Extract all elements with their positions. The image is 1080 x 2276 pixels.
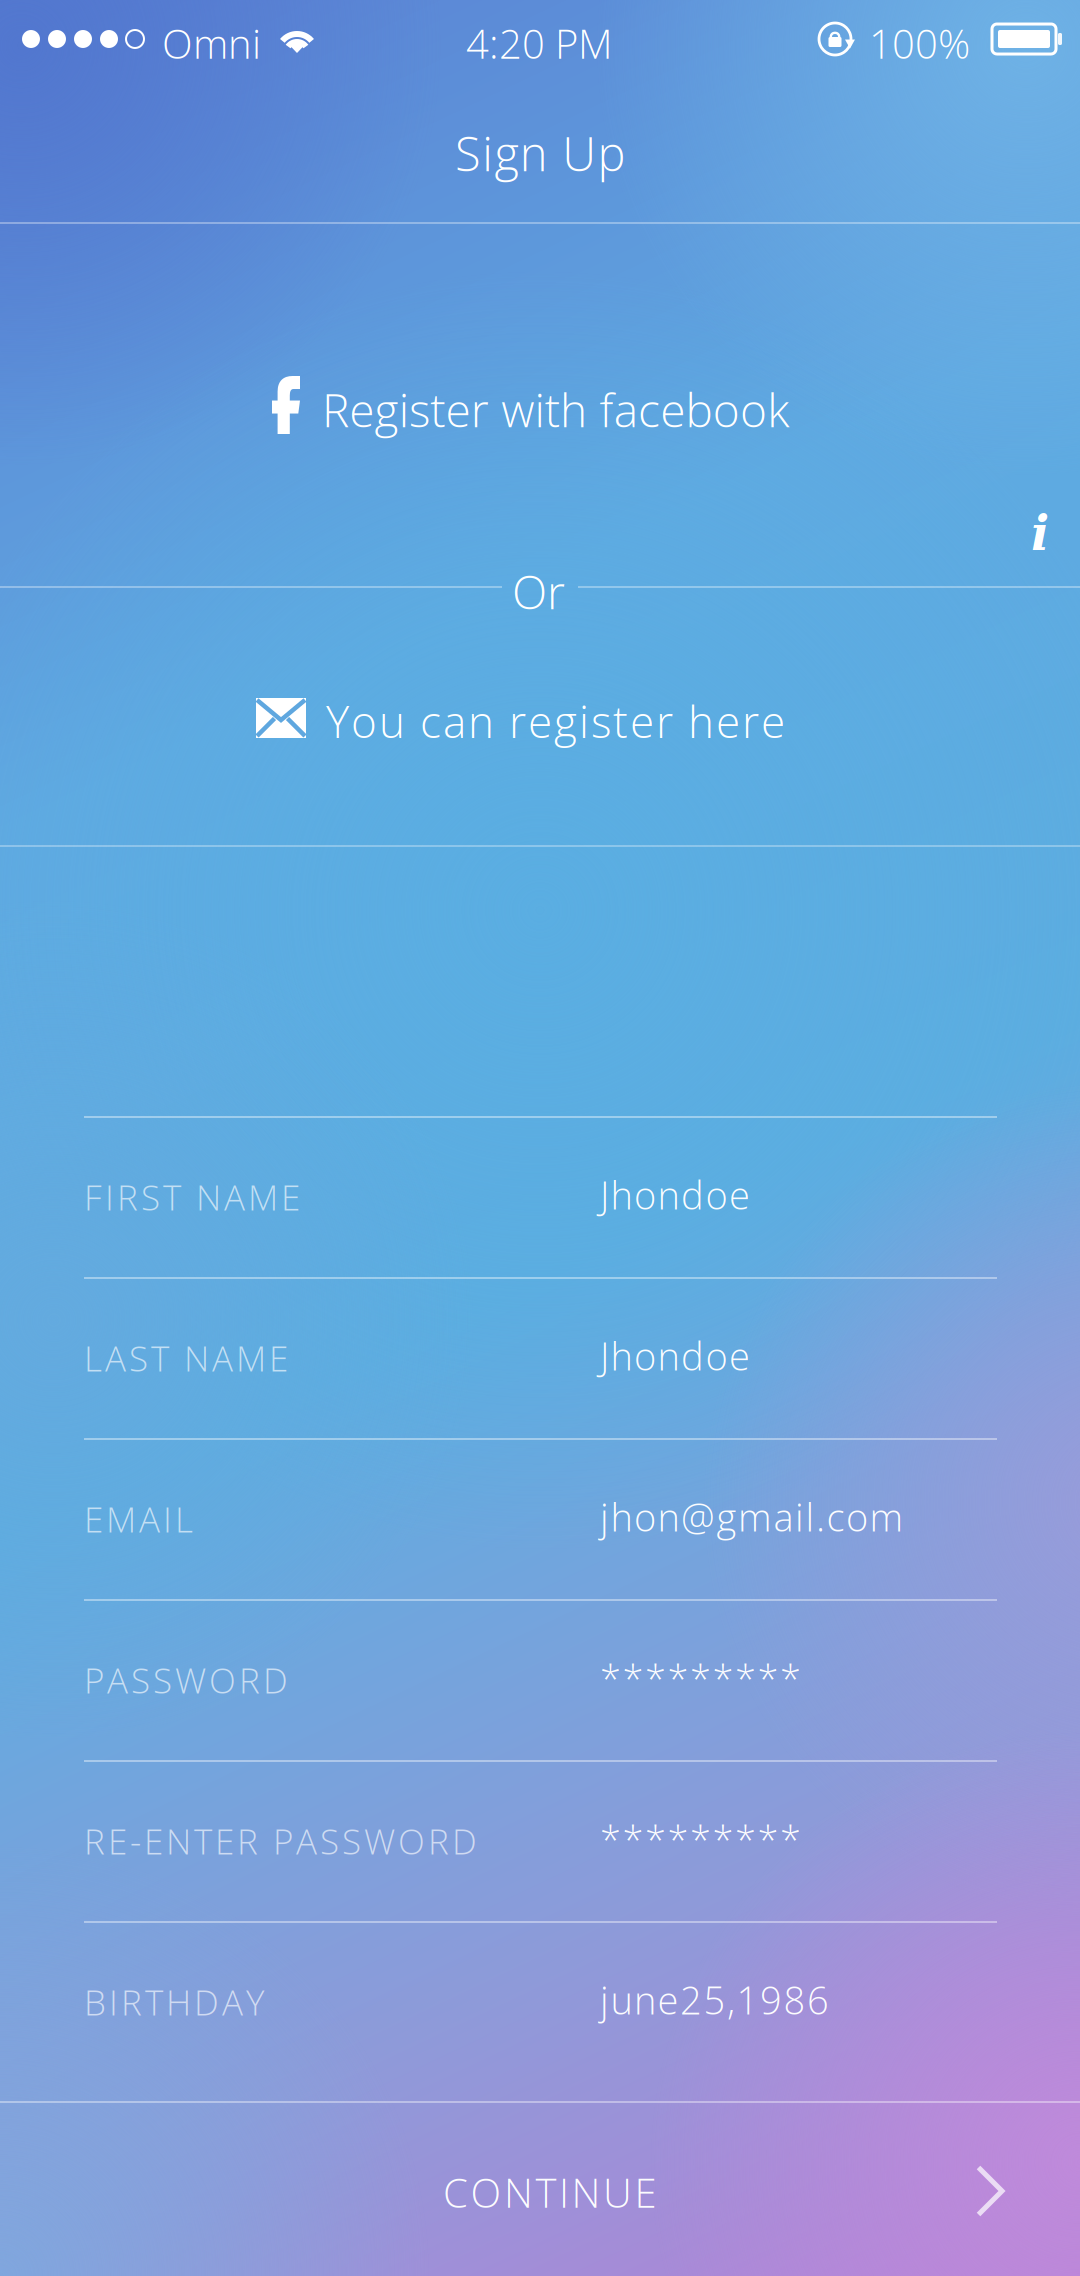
staticText: LAST NAME — [84, 1334, 288, 1382]
staticText: Or — [512, 560, 565, 623]
staticText: Omni — [162, 16, 261, 70]
staticText: 4:20 PM — [466, 16, 613, 70]
button[interactable]: LAST NAME — [0, 1278, 1080, 1439]
staticText: Sign Up — [455, 121, 625, 185]
staticText: june25,1986 — [600, 1974, 829, 2026]
staticText: 100% — [869, 16, 970, 70]
staticText: PASSWORD — [84, 1656, 288, 1704]
staticText: RE-ENTER PASSWORD — [84, 1817, 477, 1865]
staticText: Jhondoe — [600, 1330, 750, 1382]
staticText: Jhondoe — [600, 1169, 750, 1221]
staticText: ********* — [600, 1813, 801, 1865]
button[interactable]: PASSWORD — [0, 1600, 1080, 1761]
button[interactable]: RE-ENTER PASSWORD — [0, 1761, 1080, 1922]
staticText: FIRST NAME — [84, 1173, 300, 1221]
button[interactable]: You can register here — [0, 633, 1080, 803]
staticText: CONTINUE — [443, 2165, 656, 2219]
button[interactable]: FIRST NAME — [0, 1117, 1080, 1278]
staticText: EMAIL — [84, 1495, 193, 1543]
staticText: BIRTHDAY — [84, 1978, 264, 2026]
staticText: jhon@gmail.com — [600, 1491, 903, 1543]
staticText: Register with facebook — [322, 378, 789, 441]
staticText: You can register here — [326, 691, 785, 751]
button[interactable]: EMAIL — [0, 1439, 1080, 1600]
button[interactable]: Information — [997, 487, 1080, 579]
staticText: i — [1031, 505, 1049, 561]
staticText: ********* — [600, 1652, 801, 1704]
button[interactable]: CONTINUE — [0, 2103, 1080, 2276]
button[interactable]: BIRTHDAY — [0, 1922, 1080, 2083]
button[interactable]: Register with facebook — [0, 315, 1080, 495]
